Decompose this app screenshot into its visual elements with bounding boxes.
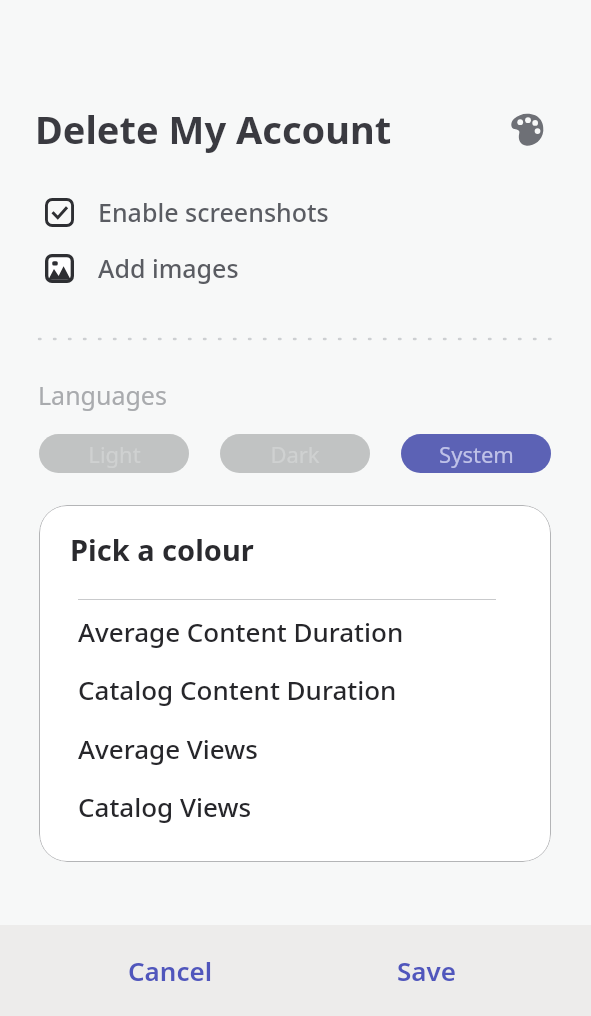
button[interactable]: Average Content Duration [59,602,531,660]
staticText: Delete My Account [35,103,392,155]
staticText: System [439,439,514,469]
button[interactable]: Add images [30,244,430,292]
staticText: Enable screenshots [98,195,329,229]
staticText: Dark [270,439,320,469]
button[interactable]: System [401,434,551,473]
staticText: Add images [98,251,239,285]
button[interactable]: Dark [220,434,370,473]
staticText: Catalog Views [78,789,252,824]
button[interactable]: Cancel [105,939,235,1001]
staticText: Pick a colour [70,530,254,569]
staticText: Average Views [78,731,258,766]
button[interactable]: Light [39,434,189,473]
staticText: Languages [38,378,167,412]
button[interactable]: Catalog Views [59,777,531,835]
staticText: Save [397,953,456,988]
button[interactable]: Enable screenshots [30,188,430,236]
button[interactable]: Average Views [59,719,531,777]
staticText: Light [88,439,141,469]
button[interactable]: Catalog Content Duration [59,660,531,718]
staticText: Cancel [128,953,213,988]
button[interactable]: Save [366,939,486,1001]
staticText: Average Content Duration [78,614,404,649]
staticText: Catalog Content Duration [78,672,397,707]
button[interactable]: Change theme [503,105,551,153]
